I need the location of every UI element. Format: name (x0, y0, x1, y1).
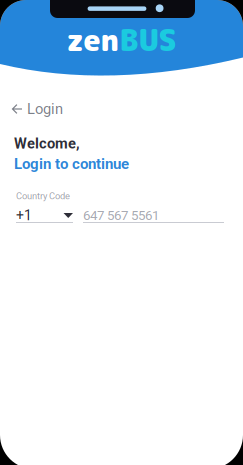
staticText: Welcome, (14, 135, 80, 152)
button[interactable]: Country Code (16, 191, 74, 223)
button[interactable]: Login (0, 98, 108, 120)
staticText: zen (66, 19, 119, 60)
staticText: 647 567 5561 (83, 208, 159, 223)
staticText: BUS (119, 19, 176, 60)
staticText: Login to continue (14, 155, 129, 173)
staticText: Login (27, 100, 63, 118)
staticText: Country Code (16, 190, 70, 201)
staticText: +1 (16, 207, 32, 224)
